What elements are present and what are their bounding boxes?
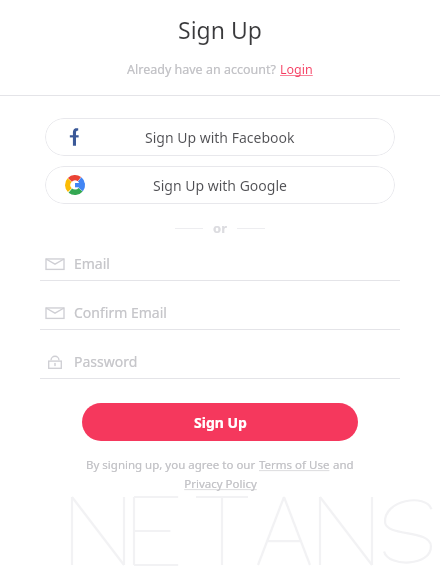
staticText: Sign Up with Facebook — [145, 128, 295, 147]
staticText: Sign Up — [178, 14, 262, 45]
button[interactable]: Confirm Email — [40, 303, 400, 330]
staticText: Already have an account? — [127, 61, 280, 78]
button[interactable]: Terms of Use — [259, 457, 330, 473]
button[interactable]: Email — [40, 254, 400, 281]
staticText: Terms of Use — [259, 457, 330, 473]
staticText: Sign Up with Google — [153, 176, 287, 195]
staticText: Login — [280, 61, 313, 78]
staticText: or — [213, 219, 227, 237]
button[interactable]: Sign up with Google — [45, 166, 395, 204]
staticText: By signing up, you agree to our — [86, 457, 259, 473]
staticText: Privacy Policy — [184, 476, 257, 492]
button[interactable]: Privacy Policy — [184, 476, 257, 492]
button[interactable]: Login — [280, 61, 313, 78]
staticText: and — [330, 457, 354, 473]
staticText: Email — [74, 254, 110, 273]
staticText: Confirm Email — [74, 303, 167, 322]
staticText: Sign Up — [194, 413, 247, 432]
staticText: Password — [74, 352, 138, 371]
button[interactable]: Sign Up — [82, 403, 358, 441]
button[interactable]: Sign up with Facebook — [45, 118, 395, 156]
button[interactable]: Password — [40, 352, 400, 379]
